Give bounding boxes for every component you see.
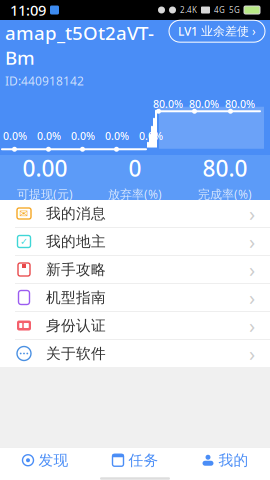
staticText: 0.0% (37, 129, 61, 143)
staticText: › (249, 200, 255, 227)
staticText: 我的 (218, 451, 248, 469)
staticText: › (249, 228, 255, 255)
button[interactable]: 身份认证 (0, 312, 270, 340)
staticText: 机型指南 (46, 288, 106, 306)
staticText: 0.00 (22, 153, 67, 183)
staticText: 80.0% (225, 97, 255, 111)
staticText: ✓ (20, 236, 28, 247)
staticText: 放弃率(%) (108, 186, 162, 202)
staticText: 0.0% (3, 129, 27, 143)
staticText: 我的消息 (46, 204, 106, 222)
staticText: 2.4K (180, 5, 197, 15)
staticText: 80.0% (189, 97, 219, 111)
staticText: 5G (229, 5, 240, 15)
staticText: 身份认证 (46, 316, 106, 334)
staticText: 80.0 (202, 153, 247, 183)
button[interactable]: 我的 (180, 448, 270, 480)
staticText: 新手攻略 (46, 260, 106, 278)
button[interactable]: LV1 (169, 20, 265, 42)
button[interactable]: 关于软件 (0, 340, 270, 367)
staticText: › (249, 312, 255, 339)
staticText: 11:09 (10, 0, 46, 20)
button[interactable]: 发现 (0, 448, 90, 480)
staticText: 4G (214, 5, 225, 15)
staticText: 完成率(%) (198, 186, 252, 202)
staticText: 关于软件 (46, 344, 106, 362)
staticText: › (249, 284, 255, 311)
staticText: 80.0% (153, 97, 183, 111)
staticText: LV1 (178, 23, 198, 39)
staticText: › (249, 340, 255, 367)
staticText: 0.0% (139, 129, 163, 143)
staticText: 0.0% (71, 129, 95, 143)
button[interactable]: 机型指南 (0, 284, 270, 312)
staticText: › (249, 256, 255, 283)
button[interactable]: 新手攻略 (0, 256, 270, 284)
staticText: 我的地主 (46, 232, 106, 250)
button[interactable]: 任务 (90, 448, 180, 480)
staticText: 0 (128, 153, 141, 183)
staticText: 可提现(元) (17, 186, 73, 202)
staticText: › (252, 23, 256, 39)
button[interactable]: ✉ (0, 200, 270, 228)
staticText: 业余差使 (201, 24, 249, 38)
staticText: 0.0% (105, 129, 129, 143)
staticText: amap_t5Ot2aVTBm (5, 20, 154, 70)
staticText: 任务 (128, 451, 158, 469)
staticText: ✉ (19, 207, 28, 219)
staticText: 发现 (38, 451, 68, 469)
staticText: ID:440918142 (5, 73, 84, 89)
button[interactable]: ✓ (0, 228, 270, 256)
